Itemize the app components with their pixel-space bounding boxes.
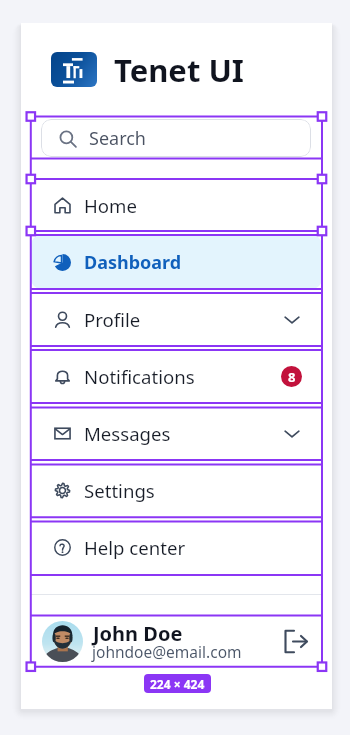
button[interactable]: Home xyxy=(31,179,322,231)
button[interactable]: Messages xyxy=(31,407,322,460)
staticText: 8 xyxy=(288,368,296,386)
staticText: johndoe@email.com xyxy=(92,641,242,662)
staticText: Notifications xyxy=(84,364,195,389)
button[interactable]: Notifications xyxy=(31,350,322,403)
staticText: Tenet UI xyxy=(114,49,244,91)
staticText: Dashboard xyxy=(84,250,182,275)
button[interactable]: Dashboard xyxy=(31,235,322,289)
staticText: Messages xyxy=(84,421,171,446)
staticText: 224 × 424 xyxy=(150,676,205,692)
button[interactable]: Help center xyxy=(31,521,322,574)
staticText: Profile xyxy=(84,307,141,332)
button[interactable]: Settings xyxy=(31,464,322,517)
button[interactable]: Log out xyxy=(283,628,309,654)
button[interactable]: Profile xyxy=(31,293,322,346)
button[interactable]: Log out xyxy=(31,615,322,667)
staticText: Home xyxy=(84,193,137,218)
staticText: Help center xyxy=(84,535,186,560)
button[interactable]: Search xyxy=(41,119,311,157)
staticText: John Doe xyxy=(93,620,183,647)
staticText: Search xyxy=(89,126,146,151)
staticText: Settings xyxy=(84,478,155,503)
